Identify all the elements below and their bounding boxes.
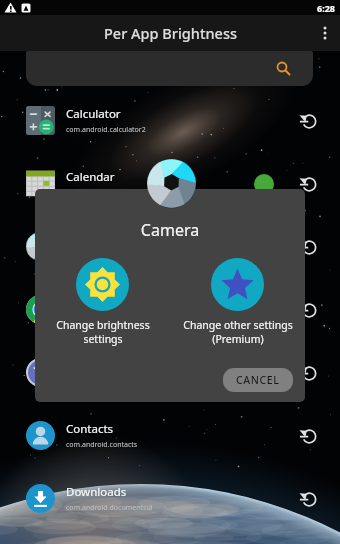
- staticText: Change other settings (Premium): [183, 318, 293, 346]
- button[interactable]: Reset: [290, 103, 326, 139]
- staticText: com.android.camera2: [66, 251, 139, 261]
- other: Search: [276, 61, 291, 76]
- button[interactable]: Camera: [0, 215, 340, 278]
- button[interactable]: Reset: [290, 229, 326, 265]
- staticText: com.android.documentsui: [66, 503, 153, 513]
- staticText: com.android.chrome: [66, 314, 135, 324]
- staticText: com.android.calendar: [66, 188, 139, 198]
- staticText: Downloads: [66, 484, 127, 500]
- staticText: com.android.contacts: [66, 440, 138, 450]
- button[interactable]: Calculator: [0, 89, 340, 152]
- staticText: 6:28: [317, 2, 335, 14]
- button[interactable]: CANCEL: [223, 368, 293, 392]
- button[interactable]: Calendar: [0, 152, 340, 215]
- button[interactable]: More options: [310, 15, 340, 51]
- button[interactable]: Search: [26, 51, 313, 86]
- staticText: com.android.calculator2: [66, 125, 146, 135]
- button[interactable]: Reset: [290, 481, 326, 517]
- button[interactable]: Reset: [290, 166, 326, 202]
- staticText: Camera: [35, 219, 305, 241]
- staticText: CANCEL: [236, 373, 280, 387]
- staticText: Per App Brightness: [104, 23, 237, 43]
- staticText: Chrome: [66, 295, 110, 311]
- staticText: Calculator: [66, 106, 121, 122]
- staticText: Contacts: [66, 421, 114, 437]
- button[interactable]: Change other settings (Premium): [170, 258, 305, 346]
- button[interactable]: Contacts: [0, 404, 340, 467]
- button[interactable]: Change brightness settings: [35, 258, 170, 346]
- button[interactable]: Downloads: [0, 467, 340, 530]
- staticText: Calendar: [66, 169, 115, 185]
- button[interactable]: Clock: [0, 341, 340, 404]
- button[interactable]: Reset: [290, 292, 326, 328]
- button[interactable]: Reset: [290, 355, 326, 391]
- button[interactable]: Reset: [290, 418, 326, 454]
- button[interactable]: Chrome: [0, 278, 340, 341]
- staticText: Change brightness settings: [56, 318, 150, 346]
